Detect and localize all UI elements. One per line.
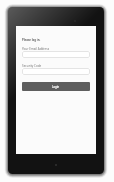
staticText: Please log in. xyxy=(22,38,41,42)
staticText: Your Email Address xyxy=(22,47,50,51)
staticText: Login xyxy=(52,85,60,89)
button[interactable] xyxy=(22,51,90,58)
button[interactable]: Login xyxy=(22,82,90,91)
staticText: Security Code xyxy=(22,64,42,68)
button[interactable] xyxy=(22,68,90,75)
